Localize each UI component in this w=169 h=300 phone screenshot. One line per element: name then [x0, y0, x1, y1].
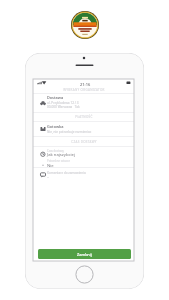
staticText: WYBRANY ORGANIZATOR [63, 88, 105, 92]
staticText: ul. Przykladowa 12 / 3 [47, 101, 79, 105]
staticText: Dostawa [47, 95, 64, 100]
button[interactable]: Czas dostawy [33, 146, 134, 168]
button[interactable]: Restaurant logo [71, 11, 99, 39]
button[interactable]: Zamknij [38, 249, 131, 259]
button[interactable]: Komentarz do zamowienia [33, 168, 134, 182]
staticText: Nie [47, 163, 54, 169]
staticText: CZAS DOSTAWY [71, 140, 97, 144]
staticText: Potrzebne sztucce [47, 159, 70, 163]
staticText: 21:16 [80, 82, 91, 87]
staticText: Komentarz do zamowienia [47, 171, 86, 175]
button[interactable]: Gotowka [33, 121, 134, 137]
staticText: Gotowka [47, 124, 64, 129]
staticText: Nie, nie potrzebuje rozmieniac [47, 130, 92, 134]
staticText: PŁATNOŚĆ [75, 115, 93, 119]
staticText: -- [47, 175, 49, 179]
button[interactable]: Dostawa [33, 93, 134, 111]
staticText: Zamknij [77, 252, 92, 257]
staticText: 00-000 Warszawa Tak [47, 105, 80, 109]
staticText: Jak najszybciej [47, 152, 76, 158]
staticText: Czas dostawy [47, 149, 64, 153]
